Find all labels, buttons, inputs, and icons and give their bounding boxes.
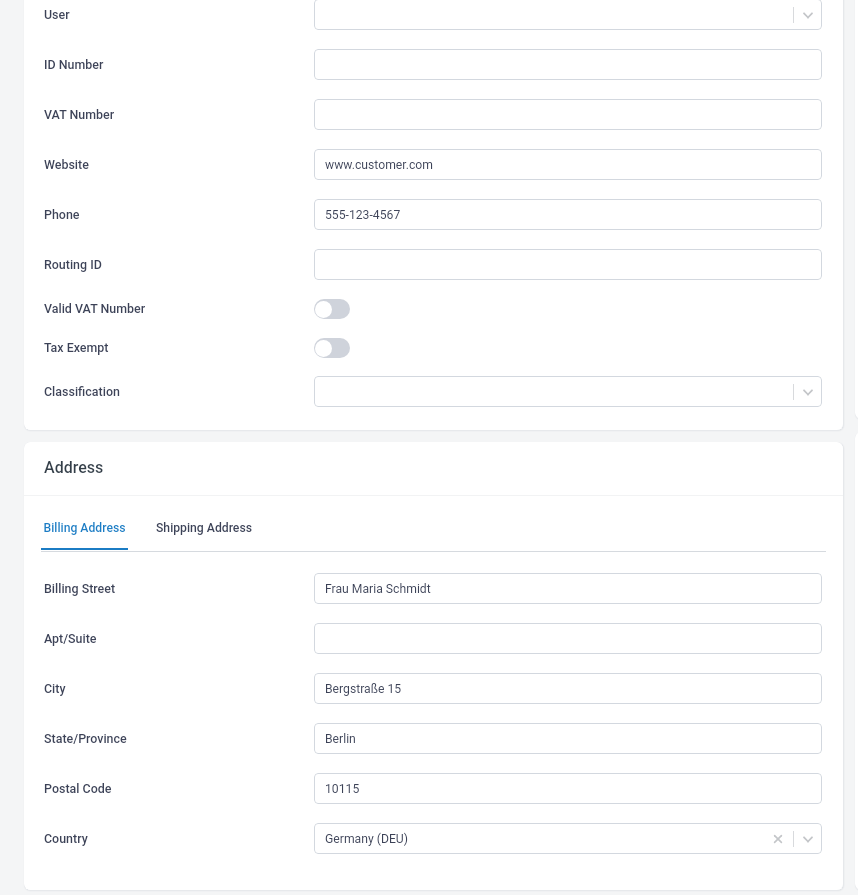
button[interactable]: Bergstraße 15 bbox=[314, 673, 822, 704]
button[interactable]: 10115 bbox=[314, 773, 822, 804]
staticText: Classification bbox=[44, 384, 120, 399]
button[interactable]: Frau Maria Schmidt bbox=[314, 573, 822, 604]
staticText: User bbox=[44, 7, 70, 22]
staticText: 10115 bbox=[325, 782, 360, 796]
staticText: Valid VAT Number bbox=[44, 301, 146, 316]
button[interactable]: Apt/Suite bbox=[314, 623, 822, 654]
staticText: Phone bbox=[44, 207, 80, 222]
staticText: Address bbox=[44, 458, 104, 477]
button[interactable]: User bbox=[314, 0, 822, 30]
button[interactable]: VAT Number bbox=[314, 99, 822, 130]
staticText: Berlin bbox=[325, 732, 356, 746]
button[interactable]: Billing Address bbox=[41, 514, 128, 550]
staticText: State/Province bbox=[44, 731, 127, 746]
button[interactable]: Tax Exempt, off bbox=[314, 338, 350, 358]
staticText: Germany (DEU) bbox=[325, 832, 408, 846]
staticText: Tax Exempt bbox=[44, 340, 109, 355]
staticText: VAT Number bbox=[44, 107, 115, 122]
staticText: 555-123-4567 bbox=[325, 208, 401, 222]
button[interactable]: Valid VAT Number, off bbox=[314, 299, 350, 319]
staticText: Postal Code bbox=[44, 781, 112, 796]
staticText: Shipping Address bbox=[156, 521, 252, 535]
button[interactable]: Open User list bbox=[801, 8, 815, 22]
button[interactable]: Germany (DEU) bbox=[314, 823, 822, 854]
button[interactable]: 555-123-4567 bbox=[314, 199, 822, 230]
staticText: ID Number bbox=[44, 57, 104, 72]
button[interactable]: Shipping Address bbox=[154, 514, 254, 553]
button[interactable]: Open Classification list bbox=[801, 385, 815, 399]
staticText: Billing Street bbox=[44, 581, 116, 596]
staticText: Country bbox=[44, 831, 88, 846]
staticText: City bbox=[44, 681, 66, 696]
staticText: Billing Address bbox=[41, 521, 128, 535]
button[interactable]: Classification bbox=[314, 376, 822, 407]
button[interactable]: Routing ID bbox=[314, 249, 822, 280]
staticText: Frau Maria Schmidt bbox=[325, 582, 431, 596]
staticText: www.customer.com bbox=[325, 158, 433, 172]
button[interactable]: Berlin bbox=[314, 723, 822, 754]
staticText: Routing ID bbox=[44, 257, 102, 272]
button[interactable]: Clear Country bbox=[771, 832, 785, 846]
button[interactable]: www.customer.com bbox=[314, 149, 822, 180]
staticText: Bergstraße 15 bbox=[325, 682, 402, 696]
staticText: Website bbox=[44, 157, 89, 172]
button[interactable]: ID Number bbox=[314, 49, 822, 80]
staticText: Apt/Suite bbox=[44, 631, 97, 646]
button[interactable]: Open Country list bbox=[801, 832, 815, 846]
